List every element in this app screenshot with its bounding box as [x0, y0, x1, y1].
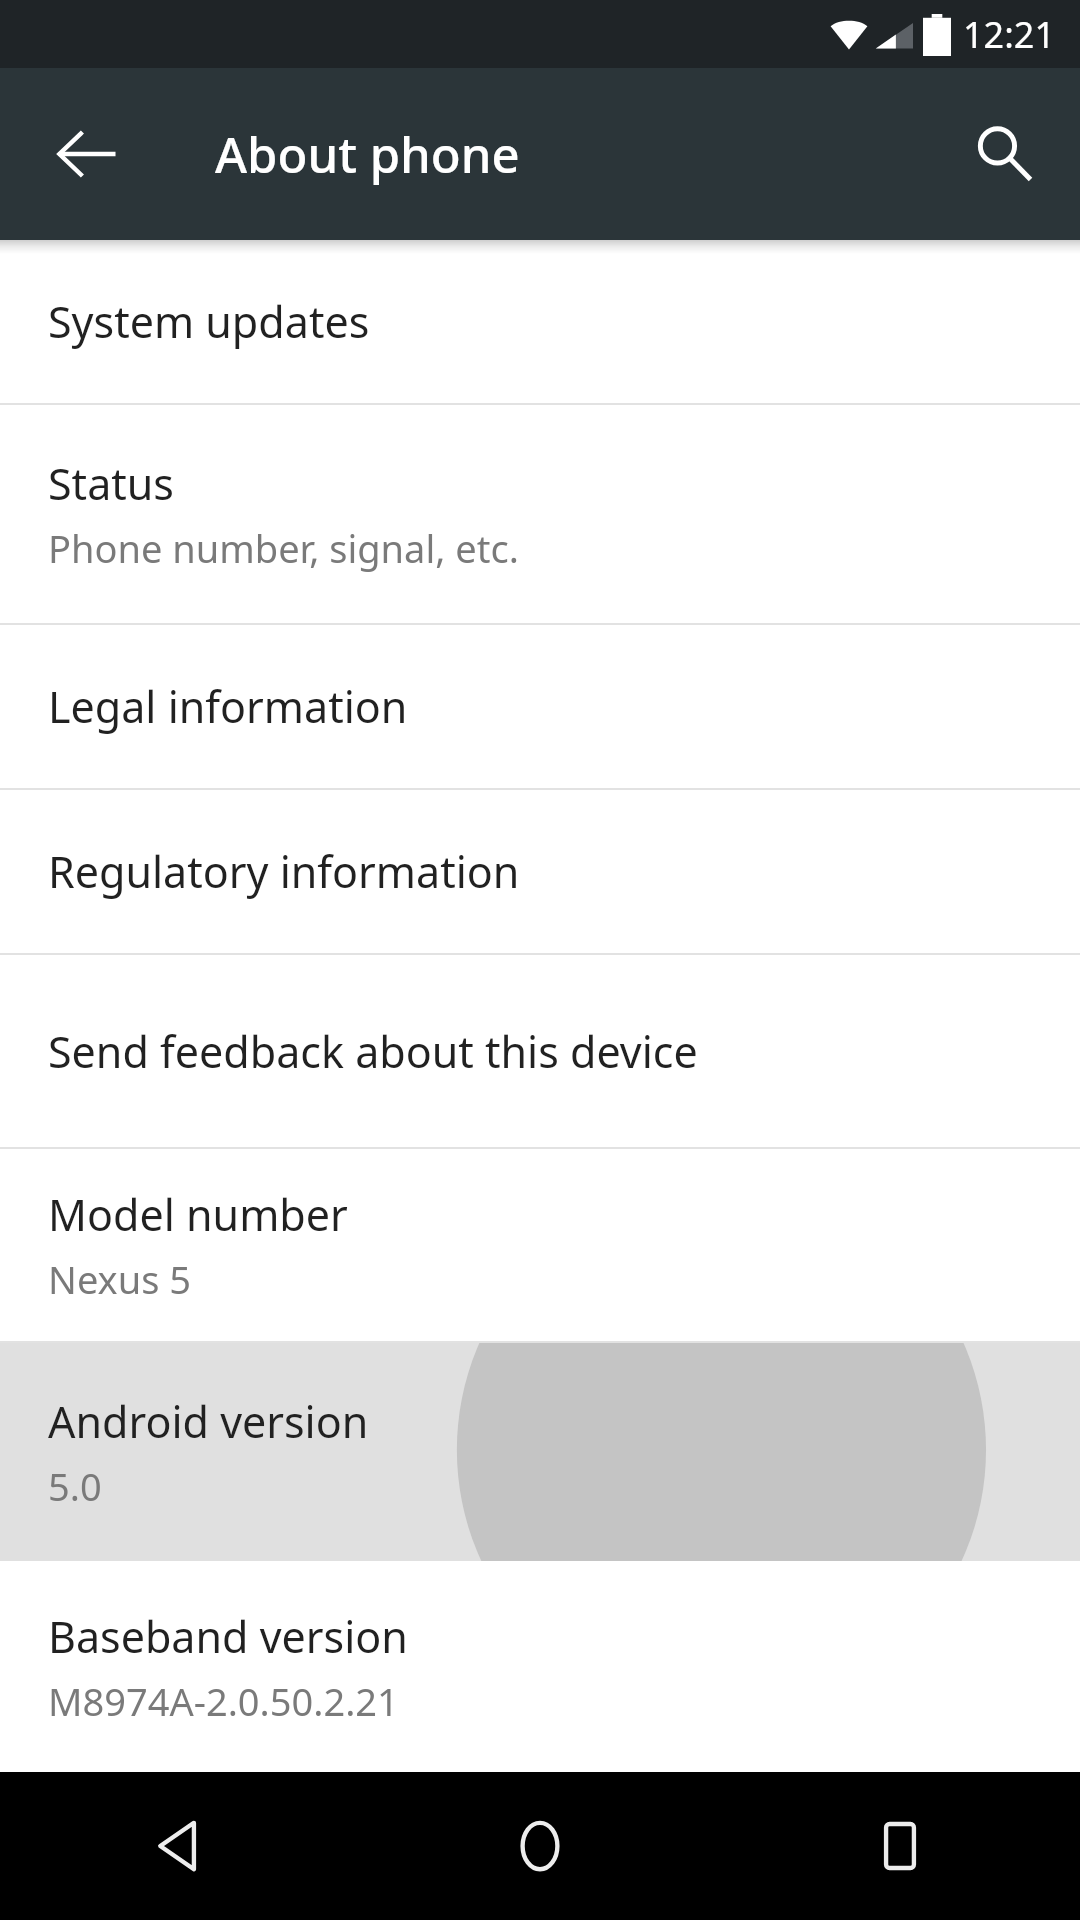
button[interactable]: Send feedback about this device: [0, 955, 1080, 1147]
button[interactable]: Back: [0, 1772, 360, 1920]
staticText: Send feedback about this device: [48, 1022, 698, 1081]
button[interactable]: Recent apps: [720, 1772, 1080, 1920]
staticText: System updates: [48, 292, 370, 351]
button[interactable]: Navigate up: [15, 82, 159, 226]
staticText: About phone: [215, 121, 520, 188]
button[interactable]: Legal information: [0, 625, 1080, 788]
staticText: Status: [48, 454, 174, 513]
staticText: Android version: [48, 1392, 369, 1451]
staticText: Nexus 5: [48, 1253, 191, 1305]
staticText: Phone number, signal, etc.: [48, 522, 519, 574]
staticText: 5.0: [48, 1460, 102, 1512]
button[interactable]: Status: [0, 405, 1080, 623]
button[interactable]: Model number: [0, 1149, 1080, 1341]
staticText: Baseband version: [48, 1607, 408, 1666]
button[interactable]: Baseband version: [0, 1561, 1080, 1772]
staticText: Legal information: [48, 677, 408, 736]
staticText: 12:21: [963, 10, 1056, 59]
button[interactable]: Search: [933, 82, 1077, 226]
staticText: M8974A-2.0.50.2.21: [48, 1675, 399, 1727]
button[interactable]: Regulatory information: [0, 790, 1080, 953]
staticText: Regulatory information: [48, 842, 520, 901]
button[interactable]: Android version: [0, 1343, 1080, 1561]
staticText: Model number: [48, 1185, 348, 1244]
button[interactable]: System updates: [0, 240, 1080, 403]
button[interactable]: Home: [360, 1772, 720, 1920]
